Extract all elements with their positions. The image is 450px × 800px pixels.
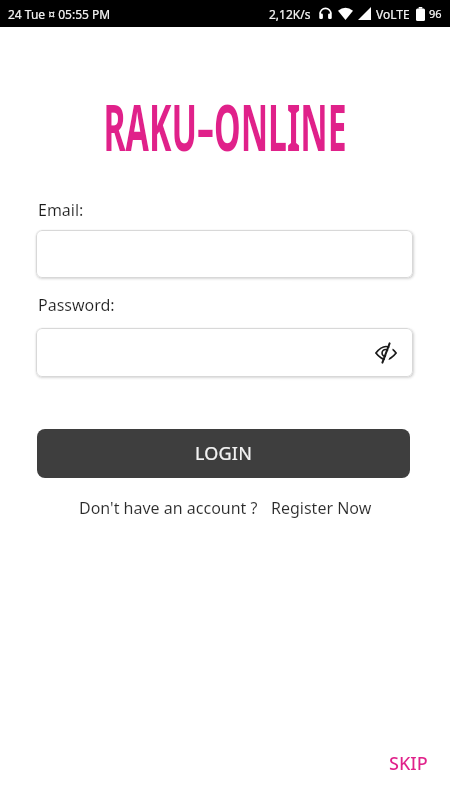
staticText: Don't have an account ? [79,497,258,519]
staticText: 96 [429,6,442,21]
staticText: Password: [38,294,115,316]
button[interactable] [36,230,413,278]
staticText: RAKU–ONLINE [95,82,355,171]
button[interactable]: LOGIN [37,429,410,478]
staticText: SKIP [389,751,428,776]
button[interactable]: SKIP [389,751,428,776]
button[interactable] [36,328,413,377]
staticText: LOGIN [195,441,253,466]
staticText: 24 Tue ¤ 05:55 PM [8,6,111,22]
staticText: 2,12K/s [269,6,311,22]
button[interactable]: Register Now [271,497,372,519]
staticText: VoLTE [376,6,410,22]
staticText: Email: [38,199,84,221]
button[interactable] [374,341,398,365]
